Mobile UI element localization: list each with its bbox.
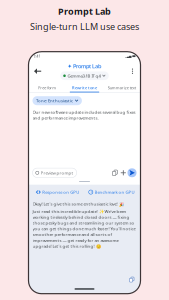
button[interactable]: Add attachment [119,169,127,177]
button[interactable]: Response on GPU [30,188,84,196]
button[interactable]: Tone: Enthusiastic [32,96,82,105]
staticText: ▁▃▅ [125,54,131,58]
staticText: Our new software update includes several… [32,109,135,121]
staticText: Preview prompt [40,170,73,176]
button[interactable]: Send [127,168,136,177]
button[interactable]: Benchmark on GPU [84,188,138,196]
staticText: 9:41 [33,54,40,58]
button[interactable]: Summarize text [103,84,140,93]
staticText: Gemma3-1B IT q4 [67,73,100,79]
staticText: Response on GPU [42,189,79,195]
staticText: Summarize text [108,85,136,90]
staticText: Single-turn LLM use cases [30,20,139,33]
button[interactable]: Back [31,66,43,77]
staticText: Benchmark on GPU [94,189,134,195]
button[interactable]: Preview prompt [32,168,77,177]
staticText: Prompt Lab [73,62,101,70]
button[interactable]: More options [127,66,137,77]
staticText: Okay! Let's give this some enthusiastic … [32,201,123,207]
staticText: Just read this incredible update! ✨ We'v… [32,208,135,249]
button[interactable]: Free form [28,84,66,93]
button[interactable]: Rewrite tone [66,84,103,93]
staticText: Tone: Enthusiastic [36,98,73,104]
staticText: Free form [38,85,56,90]
button[interactable]: Copy response [129,277,134,282]
staticText: Rewrite tone [72,85,97,90]
button[interactable]: Gemma3-1B IT q4 [60,71,109,80]
button[interactable]: Copy [111,169,119,177]
staticText: Prompt Lab [58,5,111,17]
